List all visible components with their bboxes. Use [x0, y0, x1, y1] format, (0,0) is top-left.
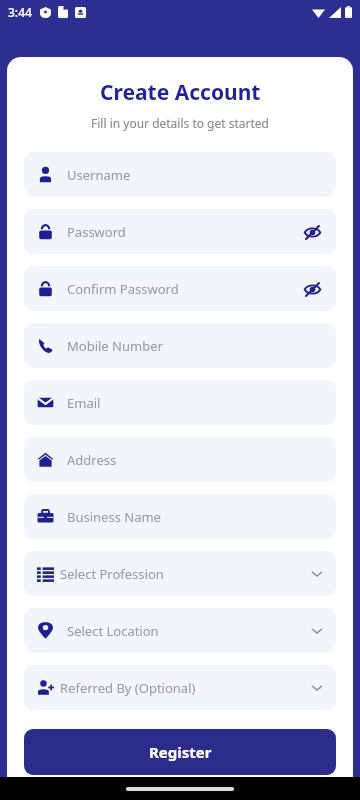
staticText: Referred By (Optional): [60, 679, 196, 697]
staticText: Select Location: [67, 622, 159, 640]
staticText: Email: [67, 394, 101, 412]
button[interactable]: Mobile Number: [24, 323, 336, 368]
button[interactable]: Register: [24, 729, 336, 775]
button[interactable]: Confirm Password: [24, 266, 336, 311]
staticText: Address: [67, 451, 117, 469]
staticText: Register: [149, 742, 212, 762]
button[interactable]: Select Location: [24, 608, 336, 653]
button[interactable]: Toggle password visibility: [301, 278, 323, 300]
staticText: Confirm Password: [67, 280, 179, 298]
staticText: 3:44: [8, 4, 32, 20]
button[interactable]: Email: [24, 380, 336, 425]
button[interactable]: Business Name: [24, 494, 336, 539]
button[interactable]: Password: [24, 209, 336, 254]
staticText: Username: [67, 166, 131, 184]
staticText: Create Account: [100, 78, 261, 107]
staticText: Business Name: [67, 508, 161, 526]
staticText: Select Profession: [60, 565, 164, 583]
button[interactable]: Referred By (Optional): [24, 665, 336, 710]
staticText: Password: [67, 223, 126, 241]
button[interactable]: Select Profession: [24, 551, 336, 596]
button[interactable]: Toggle password visibility: [301, 221, 323, 243]
button[interactable]: Address: [24, 437, 336, 482]
staticText: Mobile Number: [67, 337, 163, 355]
staticText: Fill in your details to get started: [91, 115, 269, 131]
button[interactable]: Username: [24, 152, 336, 197]
